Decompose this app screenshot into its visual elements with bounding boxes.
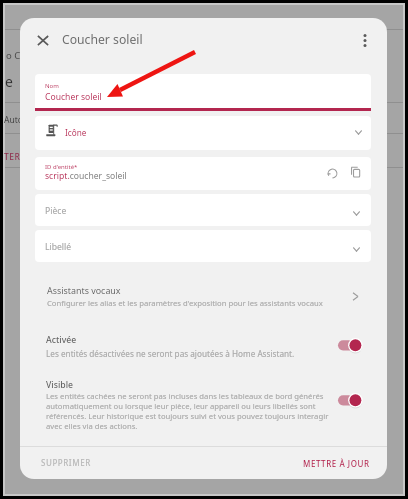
staticText: Coucher soleil bbox=[62, 31, 143, 48]
staticText: o Contrôlée bbox=[6, 49, 58, 62]
staticText: METTRE À JOUR bbox=[303, 458, 370, 469]
button[interactable] bbox=[35, 157, 371, 190]
button[interactable] bbox=[20, 373, 387, 443]
button[interactable]: Copier bbox=[344, 161, 366, 183]
staticText: Coucher soleil bbox=[45, 91, 102, 103]
button[interactable]: Plus d'options bbox=[351, 27, 378, 54]
button[interactable] bbox=[35, 230, 371, 262]
staticText: Icône bbox=[65, 127, 87, 138]
staticText: Configurer les alias et les paramètres d… bbox=[47, 298, 323, 308]
button[interactable]: METTRE À JOUR bbox=[295, 452, 378, 475]
button[interactable] bbox=[35, 194, 371, 226]
staticText: SUPPRIMER bbox=[41, 457, 91, 468]
staticText: Nom bbox=[45, 82, 59, 90]
button[interactable] bbox=[35, 116, 371, 150]
staticText: Automatis bbox=[4, 114, 45, 126]
staticText: ID d'entité* bbox=[45, 163, 78, 171]
staticText: Assistants vocaux bbox=[47, 284, 121, 296]
button[interactable] bbox=[20, 274, 387, 312]
button[interactable] bbox=[35, 74, 371, 108]
staticText: Visible bbox=[46, 379, 73, 391]
staticText: e bbox=[5, 72, 13, 91]
staticText: Activée bbox=[46, 334, 77, 346]
staticText: Libellé bbox=[45, 241, 72, 253]
button[interactable] bbox=[20, 326, 387, 362]
staticText: Pièce bbox=[45, 205, 67, 217]
staticText: script.coucher_soleil bbox=[45, 170, 127, 182]
button[interactable]: Fermer bbox=[29, 27, 56, 54]
staticText: Les entités cachées ne seront pas inclus… bbox=[46, 391, 340, 431]
button[interactable]: SUPPRIMER bbox=[33, 451, 99, 474]
button[interactable]: Réinitialiser bbox=[321, 162, 343, 184]
staticText: TER bbox=[4, 151, 21, 163]
staticText: Les entités désactivées ne seront pas aj… bbox=[46, 348, 295, 359]
